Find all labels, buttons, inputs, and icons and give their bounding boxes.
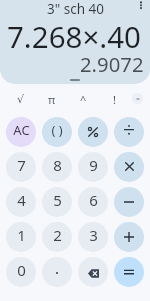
- staticText: 3" sch 40: [47, 0, 104, 18]
- button[interactable]: More options: [133, 0, 149, 11]
- button[interactable]: 4: [6, 187, 36, 217]
- button[interactable]: ^: [72, 88, 94, 110]
- staticText: 2: [53, 225, 62, 245]
- staticText: 3: [89, 225, 98, 245]
- button[interactable]: 6: [78, 187, 108, 217]
- button[interactable]: More functions: [132, 93, 143, 104]
- button[interactable]: Multiply: [114, 152, 144, 182]
- staticText: ^: [80, 92, 87, 107]
- staticText: 9: [89, 155, 98, 175]
- staticText: 8: [53, 155, 62, 175]
- button[interactable]: AC: [6, 117, 36, 147]
- button[interactable]: !: [103, 88, 125, 110]
- staticText: 2.9072: [80, 50, 144, 78]
- staticText: √: [17, 93, 25, 106]
- staticText: π: [48, 92, 56, 107]
- button[interactable]: 5: [42, 187, 72, 217]
- button[interactable]: Decimal point: [42, 257, 72, 287]
- staticText: AC: [13, 121, 30, 139]
- staticText: ( ): [51, 121, 63, 139]
- button[interactable]: Percent: [78, 117, 108, 147]
- button[interactable]: 1: [6, 222, 36, 252]
- staticText: 6: [89, 190, 98, 210]
- button[interactable]: 8: [42, 152, 72, 182]
- staticText: 0: [17, 260, 26, 280]
- button[interactable]: Subtract: [114, 187, 144, 217]
- button[interactable]: π: [41, 88, 63, 110]
- staticText: 7: [17, 155, 26, 175]
- staticText: 5: [53, 190, 62, 210]
- button[interactable]: 3: [78, 222, 108, 252]
- staticText: 7.268×.40: [7, 16, 141, 56]
- staticText: 4: [17, 190, 26, 210]
- staticText: !: [113, 92, 116, 107]
- button[interactable]: 2: [42, 222, 72, 252]
- button[interactable]: 7: [6, 152, 36, 182]
- button[interactable]: Add: [114, 222, 144, 252]
- button[interactable]: 0: [6, 257, 36, 287]
- button[interactable]: Delete: [78, 257, 108, 287]
- button[interactable]: ( ): [42, 117, 72, 147]
- button[interactable]: 9: [78, 152, 108, 182]
- staticText: 1: [17, 225, 26, 245]
- button[interactable]: Equals: [114, 257, 144, 287]
- button[interactable]: Divide: [114, 117, 144, 147]
- button[interactable]: √: [10, 88, 32, 110]
